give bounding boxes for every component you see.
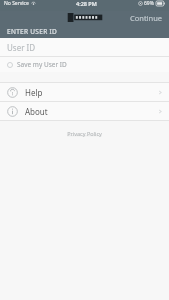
staticText: User ID	[7, 42, 36, 53]
button[interactable]: About	[0, 102, 169, 120]
staticText: Help	[25, 87, 43, 98]
staticText: No Service	[4, 0, 29, 7]
staticText: About	[25, 106, 48, 117]
staticText: ENTER USER ID	[7, 27, 58, 36]
staticText: Privacy Policy	[67, 130, 102, 137]
button[interactable]: Help	[0, 83, 169, 101]
button[interactable]: User ID	[0, 38, 169, 56]
staticText: 69%	[144, 0, 154, 7]
button[interactable]: Save my User ID	[0, 57, 169, 72]
staticText: Save my User ID	[17, 60, 67, 69]
staticText: Continue	[130, 13, 163, 22]
staticText: 4:28 PM	[76, 0, 97, 7]
button[interactable]: Privacy Policy	[64, 127, 105, 140]
button[interactable]: Continue	[124, 11, 169, 24]
